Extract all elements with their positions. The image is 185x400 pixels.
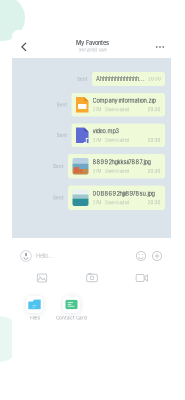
staticText: video.mp3	[92, 128, 119, 135]
staticText: 20:30	[147, 169, 160, 174]
staticText: Downloaded	[104, 138, 129, 143]
staticText: 37M	[92, 200, 101, 205]
staticText: Sent	[53, 163, 63, 169]
staticText: 37M	[92, 107, 101, 112]
staticText: My Favorites	[76, 39, 109, 46]
staticText: 37M	[92, 169, 101, 174]
staticText: Downloaded	[104, 200, 129, 205]
staticText: 37M	[92, 138, 101, 143]
staticText: 88992hgkksii7887.jpg	[92, 159, 150, 166]
staticText: Ahhhhhhhhhhhhh...	[96, 76, 145, 82]
button[interactable]: 88992hgkksii7887.jpg	[68, 154, 165, 178]
button[interactable]: Back	[16, 30, 32, 58]
staticText: 20:30	[147, 107, 160, 112]
staticText: Files	[29, 315, 39, 321]
button[interactable]: Contact Card	[63, 296, 80, 321]
staticText: 20:30	[147, 200, 160, 205]
button[interactable]: Files	[26, 296, 43, 321]
staticText: encrypted save	[78, 47, 106, 52]
staticText: Downloaded	[104, 169, 129, 174]
button[interactable]: Company information.zip	[71, 93, 165, 116]
staticText: Hello...	[36, 252, 54, 259]
staticText: Company information.zip	[92, 97, 155, 104]
button[interactable]: Video	[127, 270, 157, 286]
staticText: Sent	[77, 76, 87, 82]
staticText: 20:30	[148, 76, 161, 82]
staticText: 20:30	[147, 138, 160, 143]
button[interactable]: Camera	[77, 270, 107, 286]
staticText: Sent	[56, 102, 66, 107]
staticText: Sent	[53, 195, 63, 200]
staticText: Contact Card	[56, 315, 87, 321]
staticText: Downloaded	[104, 107, 129, 112]
button[interactable]: More options	[153, 30, 167, 58]
button[interactable]: Photos	[27, 270, 57, 286]
staticText: Sent	[56, 132, 66, 138]
button[interactable]: Ahhhhhhhhhhhhh...	[92, 72, 165, 86]
button[interactable]: video.mp3	[71, 123, 165, 147]
button[interactable]: Voice message	[19, 245, 33, 267]
staticText: 00B8692hjji8978su.jpg	[92, 190, 154, 197]
button[interactable]: Add	[151, 245, 163, 267]
button[interactable]: Emoji	[135, 245, 147, 267]
button[interactable]: 00B8692hjji8978su.jpg	[68, 185, 165, 210]
